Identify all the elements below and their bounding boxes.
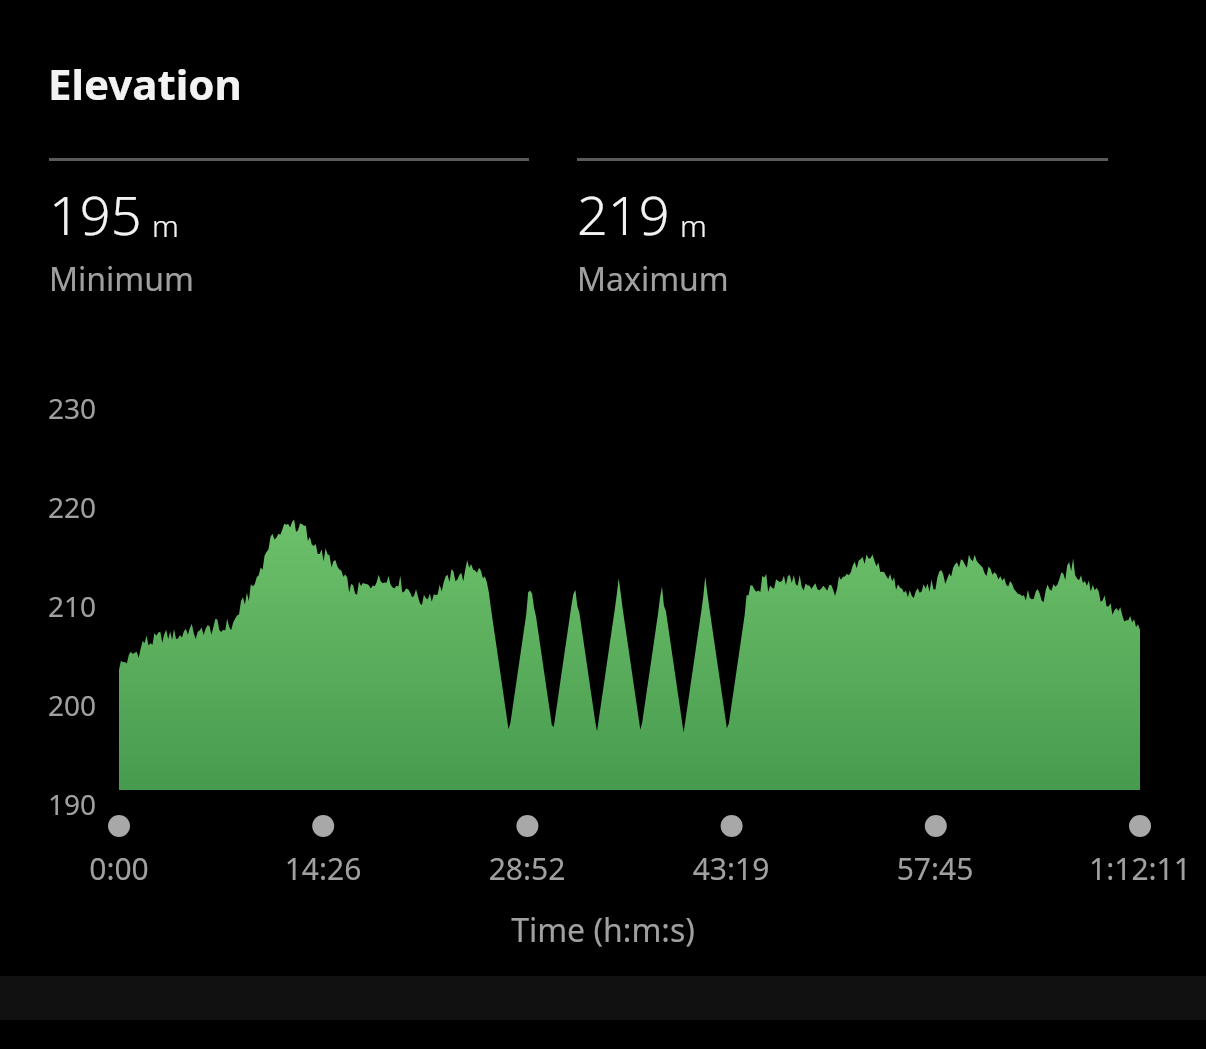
button[interactable]: 195	[49, 158, 529, 301]
staticText: 14:26	[243, 848, 403, 889]
staticText: 200	[48, 686, 97, 724]
staticText: 190	[48, 785, 97, 823]
staticText: 210	[48, 587, 97, 625]
staticText: Maximum	[577, 257, 729, 301]
staticText: Elevation	[48, 55, 242, 112]
staticText: 0:00	[39, 848, 199, 889]
staticText: Time (h:m:s)	[0, 908, 1206, 952]
button[interactable]: 230	[0, 0, 1206, 1049]
staticText: 220	[48, 488, 97, 526]
staticText: m	[680, 205, 707, 246]
staticText: 195	[49, 177, 142, 251]
staticText: m	[152, 205, 179, 246]
staticText: 1:12:11	[1060, 848, 1206, 889]
staticText: 57:45	[855, 848, 1015, 889]
staticText: 219	[577, 177, 670, 251]
staticText: 43:19	[651, 848, 811, 889]
staticText: 28:52	[447, 848, 607, 889]
staticText: 230	[48, 389, 97, 427]
button[interactable]: 219	[577, 158, 1108, 301]
staticText: Minimum	[49, 257, 194, 301]
